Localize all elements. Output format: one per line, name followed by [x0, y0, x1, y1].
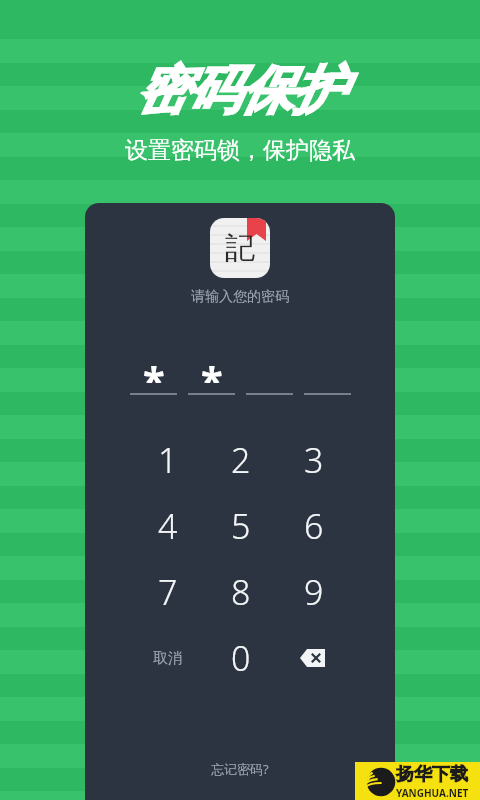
staticText: 6 [304, 503, 324, 549]
staticText: 扬华下载 [396, 763, 468, 786]
staticText: 9 [304, 569, 324, 615]
button[interactable]: 8 [204, 559, 277, 625]
button[interactable]: 1 [131, 427, 204, 493]
button[interactable]: 6 [277, 493, 350, 559]
staticText: * [201, 353, 223, 383]
button[interactable]: 4 [131, 493, 204, 559]
staticText: 3 [304, 437, 324, 483]
button[interactable]: 3 [277, 427, 350, 493]
button[interactable]: 0 [204, 625, 277, 691]
button[interactable]: 取消 [131, 625, 204, 691]
button[interactable]: 7 [131, 559, 204, 625]
staticText: 4 [158, 503, 178, 549]
button[interactable]: 2 [204, 427, 277, 493]
button[interactable]: Delete [277, 625, 350, 691]
button[interactable]: 5 [204, 493, 277, 559]
staticText: 0 [231, 635, 251, 681]
staticText: 記 [225, 229, 255, 267]
staticText: 忘记密码? [211, 760, 269, 778]
staticText: 请输入您的密码 [191, 288, 289, 306]
staticText: 5 [231, 503, 251, 549]
staticText: 8 [231, 569, 251, 615]
staticText: * [143, 353, 165, 383]
staticText: 2 [231, 437, 251, 483]
staticText: 7 [158, 569, 178, 615]
staticText: YANGHUA.NET [396, 786, 469, 800]
staticText: 1 [158, 437, 178, 483]
staticText: 密码保护 [136, 58, 344, 124]
staticText: 设置密码锁，保护隐私 [125, 136, 355, 165]
staticText: 取消 [153, 649, 183, 668]
button[interactable]: 9 [277, 559, 350, 625]
button[interactable]: 忘记密码? [201, 756, 279, 782]
